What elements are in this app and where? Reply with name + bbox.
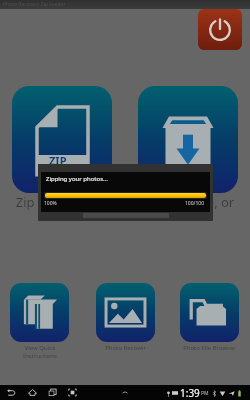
button[interactable]: Screenshot bbox=[64, 385, 80, 400]
staticText: PM bbox=[201, 390, 209, 397]
staticText: ZIP bbox=[49, 153, 67, 168]
staticText: 100% bbox=[44, 200, 57, 207]
staticText: Photo File Browser bbox=[183, 344, 236, 352]
staticText: Zip Recover files to Save, Archive, or bbox=[0, 193, 250, 211]
button[interactable]: Power / Exit bbox=[198, 9, 242, 50]
button[interactable]: Recents bbox=[44, 385, 60, 400]
button[interactable]: Zip Recover bbox=[12, 86, 112, 193]
button[interactable]: Back bbox=[3, 385, 19, 400]
staticText: Zipping your photos... bbox=[46, 175, 108, 183]
staticText: 100/100 bbox=[185, 200, 205, 207]
staticText: View Quick Instructions bbox=[23, 344, 57, 360]
staticText: Photo Recover bbox=[105, 344, 146, 352]
button[interactable]: Home bbox=[24, 385, 40, 400]
button[interactable]: Expand bbox=[119, 385, 131, 400]
staticText: 1:39 bbox=[180, 386, 200, 400]
button[interactable]: Photo File Browser bbox=[172, 283, 247, 352]
staticText: Photo Recovery Zip Feeder bbox=[3, 1, 66, 8]
button[interactable]: Photo Recover bbox=[88, 283, 163, 352]
button[interactable]: Archive bbox=[138, 86, 238, 193]
button[interactable]: View Quick Instructions bbox=[2, 283, 77, 360]
